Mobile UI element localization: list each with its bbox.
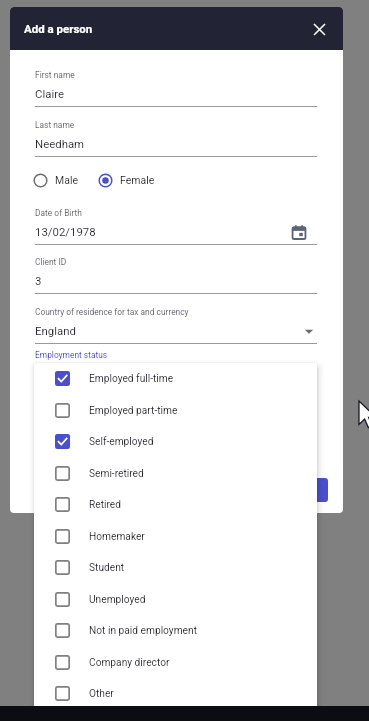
- staticText: Not in paid employment: [89, 625, 197, 637]
- staticText: Needham: [35, 137, 85, 150]
- button[interactable]: Other: [34, 678, 317, 708]
- staticText: Last name: [35, 120, 75, 130]
- staticText: Company director: [89, 657, 170, 669]
- staticText: Semi-retired: [89, 468, 144, 480]
- button[interactable]: [291, 478, 328, 502]
- button[interactable]: Employed full-time: [34, 363, 317, 394]
- staticText: 13/02/1978: [35, 225, 96, 238]
- button[interactable]: Company director: [34, 647, 317, 678]
- button[interactable]: Close: [306, 16, 332, 42]
- staticText: 3: [35, 274, 42, 287]
- staticText: Employment status: [35, 350, 108, 360]
- staticText: Retired: [89, 499, 121, 511]
- staticText: Country of residence for tax and currenc…: [35, 307, 189, 317]
- staticText: Claire: [35, 87, 64, 100]
- button[interactable]: Pick date: [291, 224, 307, 240]
- staticText: Male: [55, 174, 78, 186]
- button[interactable]: Unemployed: [34, 584, 317, 615]
- button[interactable]: Female: [98, 169, 155, 191]
- button[interactable]: Employed part-time: [34, 395, 317, 426]
- staticText: Employed full-time: [89, 373, 174, 385]
- staticText: Unemployed: [89, 594, 146, 606]
- staticText: Other: [89, 688, 114, 700]
- staticText: First name: [35, 70, 75, 80]
- button[interactable]: Student: [34, 552, 317, 583]
- button[interactable]: Retired: [34, 489, 317, 520]
- staticText: Female: [120, 174, 155, 186]
- button[interactable]: Not in paid employment: [34, 615, 317, 646]
- staticText: Add a person: [24, 22, 93, 35]
- button[interactable]: Expand country: [300, 322, 318, 340]
- staticText: Self-employed: [89, 436, 154, 448]
- button[interactable]: Homemaker: [34, 521, 317, 552]
- staticText: Client ID: [35, 257, 67, 267]
- staticText: Student: [89, 562, 125, 574]
- staticText: Homemaker: [89, 531, 145, 543]
- staticText: England: [35, 324, 76, 337]
- button[interactable]: Semi-retired: [34, 458, 317, 489]
- staticText: Date of Birth: [35, 208, 82, 218]
- button[interactable]: Self-employed: [34, 426, 317, 457]
- staticText: Employed part-time: [89, 405, 178, 417]
- button[interactable]: Male: [33, 169, 78, 191]
